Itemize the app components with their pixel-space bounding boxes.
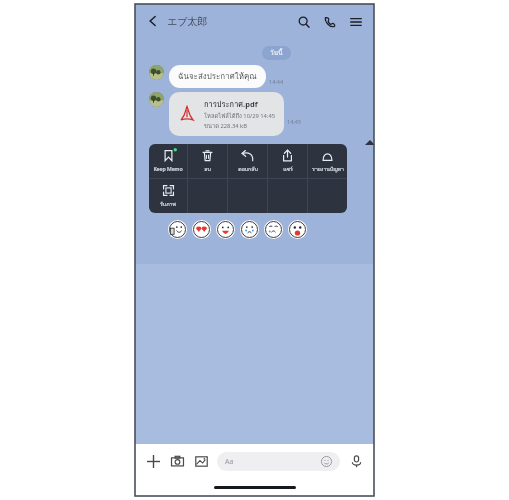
button[interactable]: Aa — [217, 452, 340, 471]
staticText: Keep Memo — [153, 165, 183, 172]
staticText: วันนี้ — [270, 48, 283, 58]
staticText: 14:44 — [269, 78, 284, 85]
staticText: ขนาด 228.34 kB — [204, 121, 247, 130]
button[interactable]: Camera — [168, 452, 186, 470]
button[interactable]: React thumb — [168, 220, 187, 239]
staticText: Aa — [225, 457, 234, 467]
button[interactable]: Add — [144, 452, 162, 470]
staticText: รายงานปัญหา — [312, 165, 344, 173]
button[interactable]: รับภาพ — [149, 179, 187, 213]
button[interactable]: Profile photo — [149, 65, 164, 80]
staticText: โหลดไฟล์ได้ถึง 10/29 14:45 — [204, 111, 276, 120]
button[interactable]: React heart — [192, 220, 211, 239]
button[interactable]: Menu — [347, 13, 364, 30]
button[interactable]: Keep Memo — [149, 144, 187, 178]
button[interactable]: React shock — [288, 220, 307, 239]
button[interactable]: Search — [295, 13, 312, 30]
button[interactable]: ตอบกลับ — [228, 144, 267, 178]
button[interactable]: React smile — [216, 220, 235, 239]
button[interactable]: ลบ — [188, 144, 227, 178]
button[interactable]: React tear — [264, 220, 283, 239]
staticText: ลบ — [204, 165, 211, 173]
button[interactable]: Emoji — [321, 456, 332, 467]
staticText: エブ太郎 — [167, 15, 208, 28]
button[interactable]: รายงานปัญหา — [308, 144, 347, 178]
button[interactable]: การประกาศ.pdf — [169, 92, 284, 136]
staticText: ฉันจะส่งประกาศให้คุณ — [178, 70, 257, 83]
staticText: 14:45 — [287, 118, 302, 125]
button[interactable]: แชร์ — [268, 144, 307, 178]
staticText: ตอบกลับ — [238, 165, 258, 173]
staticText: รับภาพ — [160, 200, 176, 208]
button[interactable]: Call — [321, 13, 338, 30]
button[interactable]: Voice message — [347, 452, 365, 470]
button[interactable]: Profile photo — [149, 92, 164, 107]
button[interactable]: React cry — [240, 220, 259, 239]
button[interactable]: Gallery — [192, 452, 210, 470]
staticText: การประกาศ.pdf — [204, 98, 258, 110]
button[interactable]: Back — [145, 13, 161, 29]
button[interactable]: ฉันจะส่งประกาศให้คุณ — [169, 65, 266, 88]
staticText: แชร์ — [283, 165, 293, 173]
